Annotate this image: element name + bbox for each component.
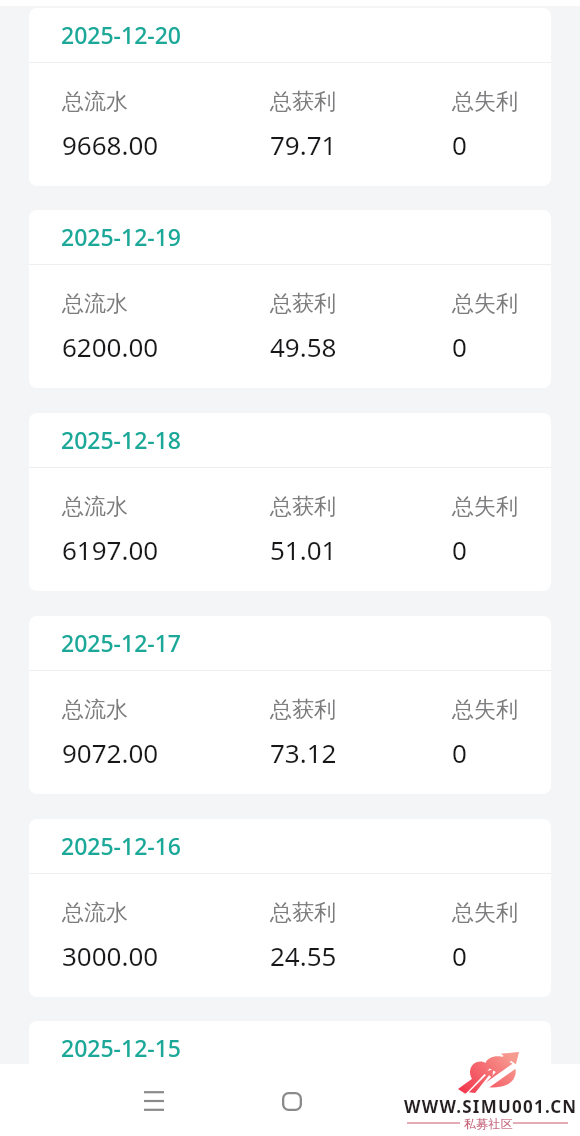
staticText: 79.71 <box>270 127 337 162</box>
staticText: 2025-12-18 <box>61 424 182 455</box>
staticText: 总失利 <box>452 1101 518 1129</box>
staticText: 总流水 <box>62 493 128 521</box>
staticText: 2025-12-15 <box>61 1032 182 1063</box>
staticText: 总失利 <box>452 493 518 521</box>
staticText: 73.12 <box>270 735 337 770</box>
staticText: 总获利 <box>270 899 336 927</box>
staticText: 总获利 <box>270 290 336 318</box>
staticText: 2025-12-19 <box>61 221 182 252</box>
button[interactable]: 2025-12-15 <box>29 1021 551 1136</box>
staticText: 9072.00 <box>62 735 159 770</box>
staticText: 总获利 <box>270 696 336 724</box>
staticText: 总获利 <box>270 88 336 116</box>
staticText: 总流水 <box>62 88 128 116</box>
staticText: 总获利 <box>270 493 336 521</box>
staticText: 2025-12-16 <box>61 830 182 861</box>
staticText: 0 <box>452 938 467 973</box>
staticText: 9668.00 <box>62 127 159 162</box>
staticText: 0 <box>452 127 467 162</box>
button[interactable]: 2025-12-18 <box>29 413 551 591</box>
staticText: 6200.00 <box>62 329 159 364</box>
staticText: 24.55 <box>270 938 337 973</box>
staticText: 2025-12-17 <box>61 627 182 658</box>
staticText: 总流水 <box>62 899 128 927</box>
staticText: 总失利 <box>452 88 518 116</box>
staticText: 私募社区 <box>464 1116 513 1131</box>
staticText: 6197.00 <box>62 532 159 567</box>
staticText: WWW.SIMU001.CN <box>404 1095 578 1118</box>
button[interactable]: Recent apps <box>130 1077 178 1125</box>
button[interactable]: Home <box>268 1077 316 1125</box>
staticText: 3000.00 <box>62 938 159 973</box>
staticText: 51.01 <box>270 532 337 567</box>
staticText: 总获利 <box>271 1101 337 1129</box>
button[interactable]: 2025-12-16 <box>29 819 551 997</box>
staticText: 0 <box>452 532 467 567</box>
staticText: 总失利 <box>452 696 518 724</box>
staticText: 总流水 <box>62 290 128 318</box>
button[interactable]: 2025-12-17 <box>29 616 551 794</box>
staticText: 2025-12-20 <box>61 19 182 50</box>
staticText: 总流水 <box>62 696 128 724</box>
staticText: 49.58 <box>270 329 337 364</box>
staticText: 总失利 <box>452 899 518 927</box>
button[interactable]: 2025-12-20 <box>29 8 551 186</box>
staticText: 0 <box>452 735 467 770</box>
staticText: 总失利 <box>452 290 518 318</box>
staticText: 0 <box>452 329 467 364</box>
button[interactable]: 2025-12-19 <box>29 210 551 388</box>
